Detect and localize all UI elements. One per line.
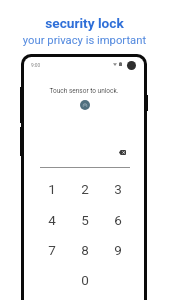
staticText: security lock	[0, 15, 169, 31]
button[interactable]: 1	[38, 176, 66, 202]
button[interactable]: 7	[38, 237, 66, 263]
staticText: 0	[81, 272, 89, 288]
staticText: Touch sensor to unlock.	[24, 87, 144, 95]
button[interactable]: 3	[104, 176, 132, 202]
staticText: 9	[114, 242, 122, 258]
button[interactable]: Backspace	[116, 147, 128, 157]
button[interactable]: 2	[71, 176, 99, 202]
button[interactable]: 4	[38, 207, 66, 233]
staticText: 9:00	[31, 63, 41, 69]
button[interactable]: 5	[71, 207, 99, 233]
staticText: your privacy is important	[0, 34, 169, 47]
staticText: 6	[114, 212, 122, 228]
button[interactable]: 0	[71, 267, 99, 293]
staticText: 1	[48, 181, 56, 197]
button[interactable]: 8	[71, 237, 99, 263]
staticText: 2	[81, 181, 89, 197]
button[interactable]: 9	[104, 237, 132, 263]
button[interactable]: Fingerprint sensor	[80, 100, 90, 110]
staticText: 5	[81, 212, 89, 228]
staticText: 3	[114, 181, 122, 197]
staticText: 8	[81, 242, 89, 258]
staticText: 7	[48, 242, 56, 258]
staticText: 4	[48, 212, 56, 228]
button[interactable]: 6	[104, 207, 132, 233]
